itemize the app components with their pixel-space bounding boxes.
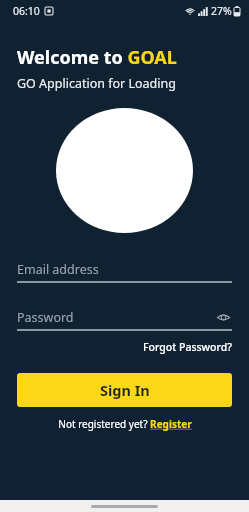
staticText: Forgot Password? (143, 340, 232, 354)
staticText: Email address (17, 261, 99, 278)
staticText: Not registered yet? Register (58, 417, 192, 431)
staticText: Password (17, 309, 214, 326)
button[interactable]: Sign In (17, 373, 232, 407)
staticText: GO Application for Loading (17, 75, 176, 92)
staticText: 06:10 (13, 4, 40, 18)
button[interactable]: Email address (17, 257, 232, 281)
button[interactable]: Not registered yet? Register (17, 417, 232, 431)
button[interactable]: Show password (214, 308, 232, 326)
button[interactable]: Forgot Password? (143, 340, 232, 354)
staticText: Welcome to GOAL (17, 45, 177, 70)
staticText: 27% (211, 4, 232, 18)
staticText: Sign In (100, 380, 150, 400)
button[interactable]: Password (17, 305, 232, 329)
